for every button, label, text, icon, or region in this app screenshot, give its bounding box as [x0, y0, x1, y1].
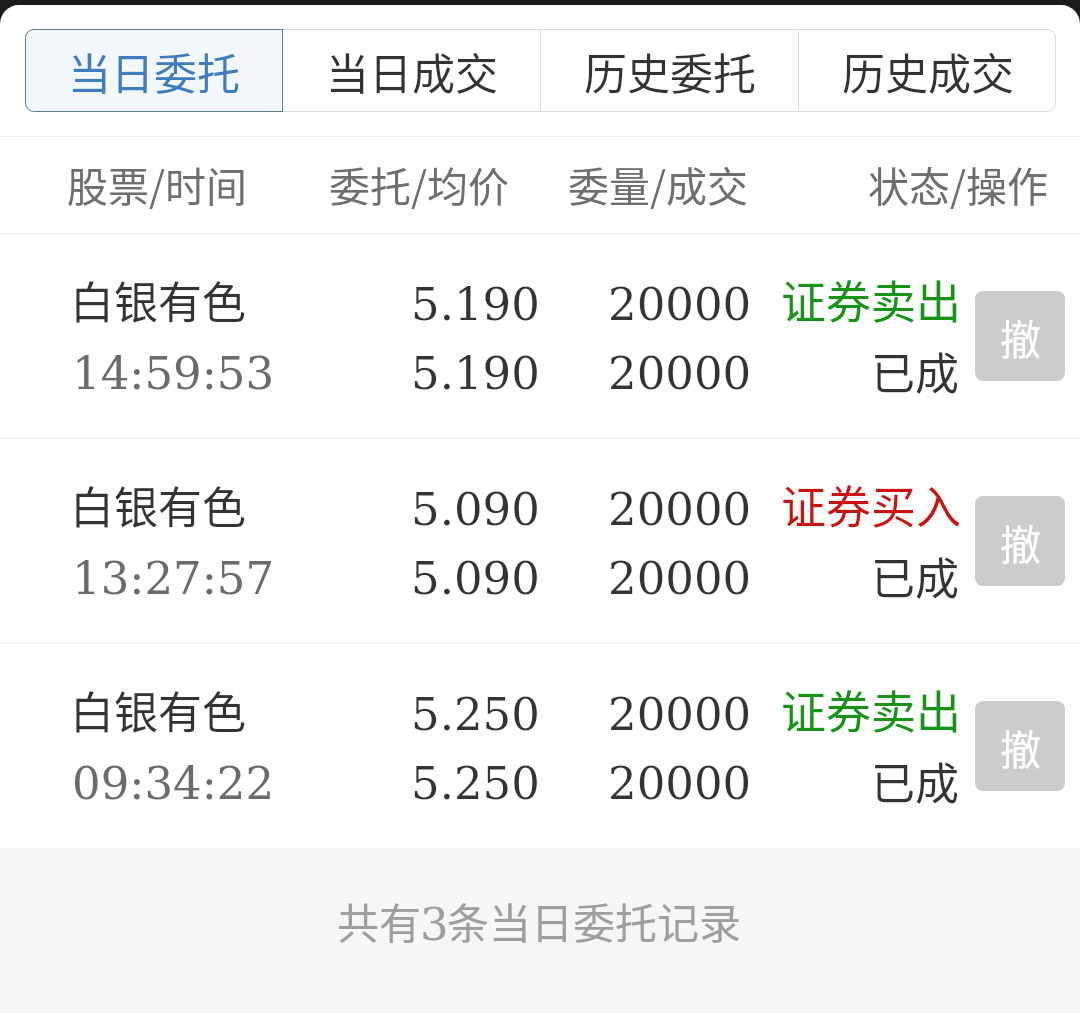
staticText: 20000: [608, 347, 752, 399]
staticText: 13:27:57: [72, 552, 275, 604]
button[interactable]: 白银有色: [0, 438, 1080, 643]
staticText: 共有: [337, 890, 422, 951]
staticText: 状态/操作: [868, 154, 1049, 213]
staticText: 白银有色: [70, 473, 246, 537]
staticText: 撤: [1000, 307, 1041, 366]
staticText: 当日委托: [68, 40, 240, 102]
button[interactable]: 历史委托: [541, 29, 799, 112]
button[interactable]: 历史成交: [799, 29, 1056, 112]
staticText: 历史委托: [584, 40, 756, 102]
button[interactable]: 白银有色: [0, 233, 1080, 438]
staticText: 14:59:53: [72, 347, 275, 399]
button[interactable]: 当日委托: [25, 29, 283, 112]
staticText: 股票/时间: [67, 154, 248, 213]
staticText: 撤: [1000, 717, 1041, 776]
staticText: 5.090: [411, 552, 540, 604]
staticText: 委量/成交: [568, 154, 749, 213]
staticText: 已成: [871, 339, 959, 403]
staticText: 已成: [871, 749, 959, 813]
staticText: 白银有色: [70, 268, 246, 332]
staticText: 5.250: [411, 757, 540, 809]
staticText: 证券买入: [781, 472, 962, 537]
staticText: 5.190: [411, 278, 540, 330]
staticText: 5.090: [411, 483, 540, 535]
staticText: 历史成交: [842, 40, 1014, 102]
staticText: 3: [420, 898, 449, 950]
staticText: 20000: [608, 483, 752, 535]
staticText: 条当日委托记录: [447, 890, 742, 951]
button[interactable]: 撤单: [975, 701, 1065, 791]
staticText: 证券卖出: [781, 267, 962, 332]
staticText: 5.250: [411, 688, 540, 740]
staticText: 证券卖出: [781, 677, 962, 742]
staticText: 20000: [608, 552, 752, 604]
button[interactable]: 白银有色: [0, 643, 1080, 848]
staticText: 已成: [871, 544, 959, 608]
button[interactable]: 撤单: [975, 496, 1065, 586]
staticText: 20000: [608, 688, 752, 740]
button[interactable]: 撤单: [975, 291, 1065, 381]
button[interactable]: 当日成交: [283, 29, 541, 112]
staticText: 当日成交: [326, 40, 498, 102]
staticText: 撤: [1000, 512, 1041, 571]
staticText: 09:34:22: [72, 757, 275, 809]
staticText: 委托/均价: [329, 154, 510, 213]
staticText: 20000: [608, 757, 752, 809]
staticText: 5.190: [411, 347, 540, 399]
staticText: 白银有色: [70, 678, 246, 742]
staticText: 20000: [608, 278, 752, 330]
